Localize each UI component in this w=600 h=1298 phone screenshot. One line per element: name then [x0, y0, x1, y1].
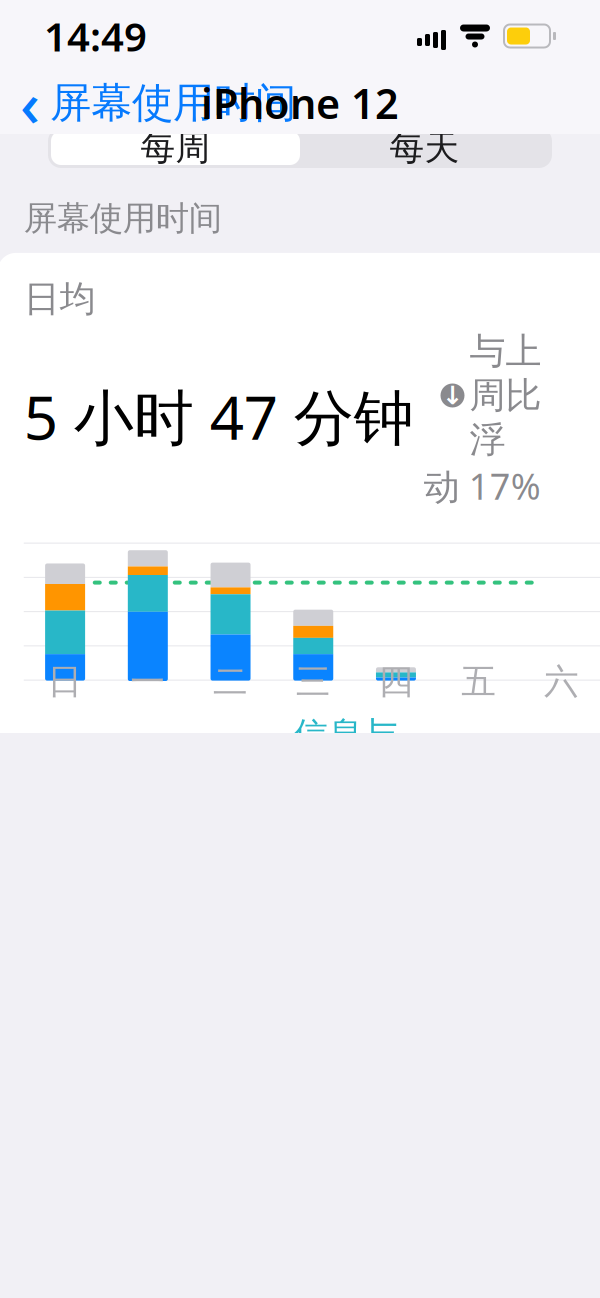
staticText: 二 — [213, 660, 248, 703]
staticText: ↓ — [442, 381, 463, 410]
staticText: 四 — [378, 660, 413, 703]
staticText: 一 — [130, 660, 165, 703]
staticText: 屏幕使用时间 — [50, 78, 296, 128]
button[interactable]: ‹ — [0, 56, 296, 150]
button[interactable]: 每天 — [300, 131, 549, 165]
staticText: 5 小时 47 分钟 — [24, 377, 414, 456]
staticText: 三 — [296, 660, 331, 703]
staticText: 14:49 — [44, 9, 147, 62]
staticText: iPhone 12 — [201, 76, 399, 130]
staticText: 六 — [544, 660, 579, 703]
staticText: 与上周比浮 — [469, 329, 541, 462]
staticText: ‹ — [20, 62, 40, 144]
staticText: 五 — [461, 660, 496, 703]
staticText: 每周 — [140, 127, 210, 169]
staticText: 屏幕使用时间 — [24, 198, 222, 239]
staticText: 日 — [48, 660, 83, 703]
staticText: 信息与阅读 — [293, 714, 398, 799]
staticText: 动 17% — [424, 462, 541, 510]
staticText: 日均 — [24, 277, 96, 321]
button[interactable]: 每周 — [51, 131, 300, 165]
staticText: 每天 — [389, 127, 459, 169]
